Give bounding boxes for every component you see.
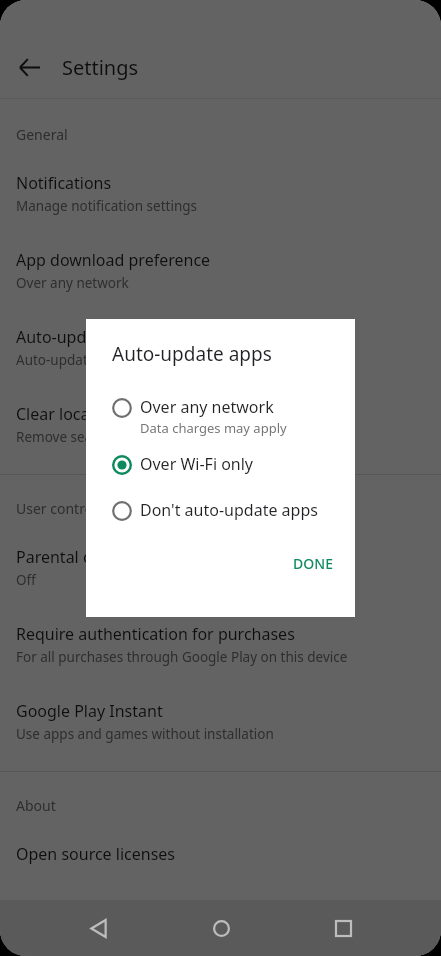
button[interactable]: Home [197,904,245,952]
staticText: Data charges may apply [140,419,287,437]
staticText: Manage notification settings [16,197,198,215]
staticText: Use apps and games without installation [16,725,274,743]
staticText: Don't auto-update apps [140,499,318,521]
staticText: Settings [62,54,139,81]
button[interactable]: Don't auto-update apps [86,492,355,528]
staticText: User controls [16,499,104,518]
button[interactable]: Clear local search history [0,369,441,446]
staticText: Over any network [16,274,129,292]
staticText: App download preference [16,249,211,271]
staticText: DONE [293,554,333,573]
staticText: Over Wi-Fi only [140,453,254,475]
button[interactable]: Open source licenses [0,815,441,865]
button[interactable]: Over any network [86,389,355,444]
staticText: Require authentication for purchases [16,623,295,645]
staticText: Auto-update apps [16,326,151,348]
staticText: Remove searches performed on this device [16,428,289,446]
button[interactable]: DONE [281,546,345,581]
staticText: Auto-update apps [112,341,272,367]
staticText: Google Play Instant [16,700,163,722]
button[interactable]: Auto-update apps [0,292,441,369]
staticText: Auto-update apps over Wi-Fi only [16,351,226,369]
button[interactable]: App download preference [0,215,441,292]
button[interactable]: Back [74,904,122,952]
staticText: Open source licenses [16,843,175,865]
staticText: Over any network [140,396,274,418]
staticText: About [16,796,56,815]
staticText: Off [16,571,36,589]
button[interactable]: Require authentication for purchases [0,589,441,666]
button[interactable]: Notifications [0,144,441,215]
staticText: Notifications [16,172,112,194]
button[interactable]: Google Play Instant [0,666,441,743]
staticText: Clear local search history [16,403,204,425]
button[interactable]: Back [12,50,46,84]
staticText: For all purchases through Google Play on… [16,648,348,666]
button[interactable]: Parental controls [0,518,441,589]
button[interactable]: Over Wi-Fi only [86,446,355,482]
staticText: Parental controls [16,546,144,568]
button[interactable]: Recent apps [319,904,367,952]
staticText: General [16,125,68,144]
